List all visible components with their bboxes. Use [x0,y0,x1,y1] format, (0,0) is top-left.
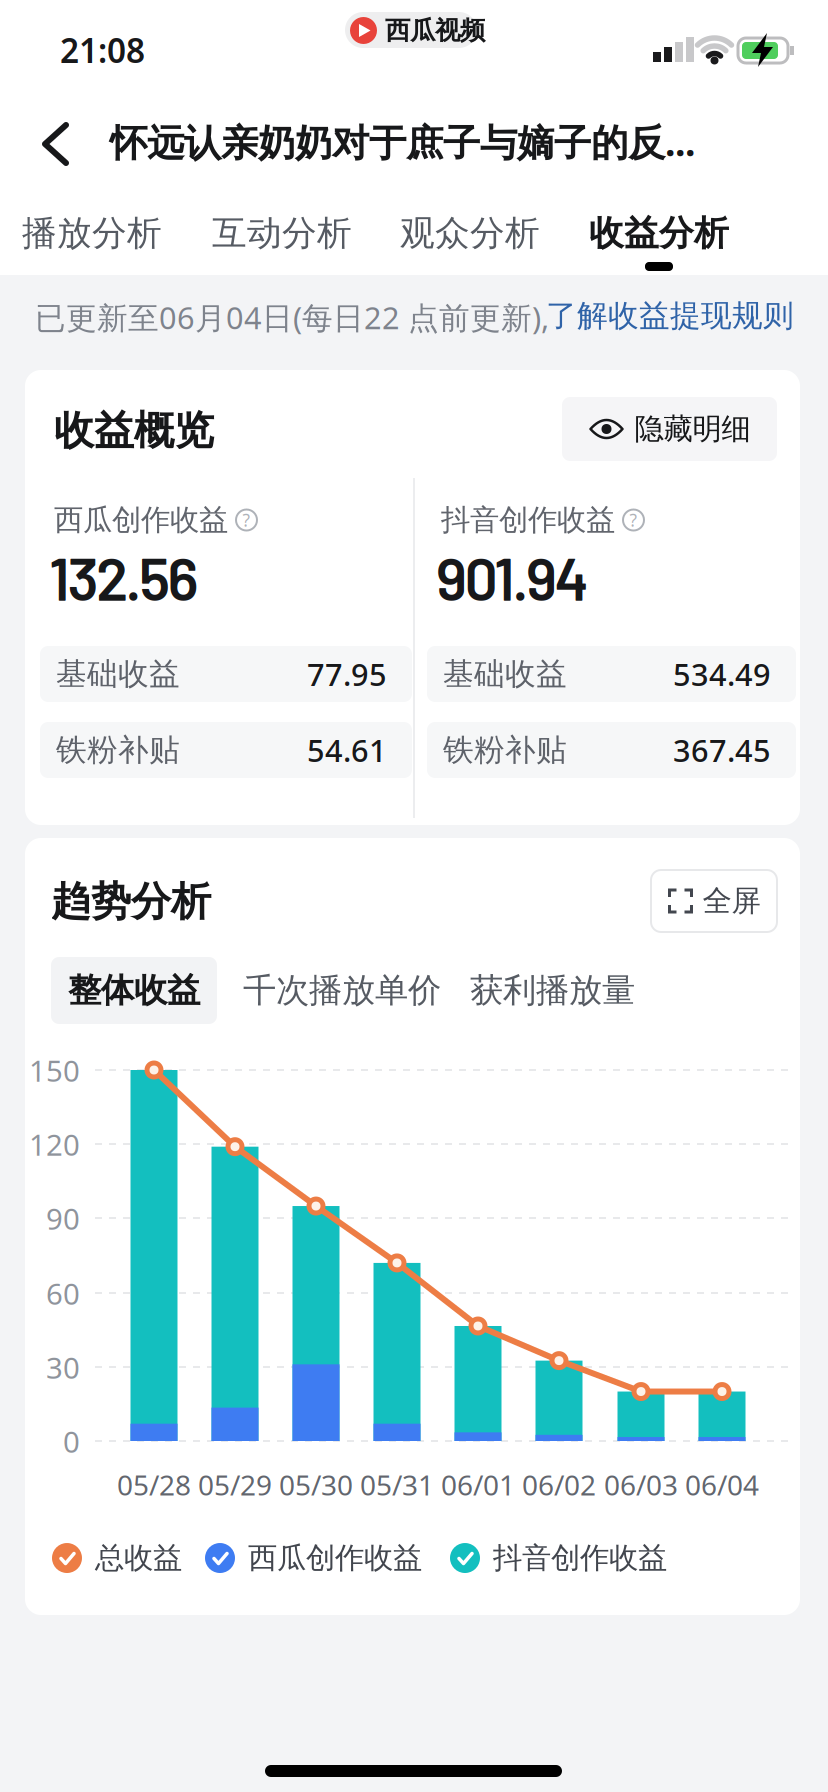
staticText: 了解收益提现规则 [546,297,794,335]
staticText: ? [242,508,250,531]
staticText: 抖音创作收益 [493,1540,667,1576]
staticText: 铁粉补贴 [56,731,180,769]
staticText: ? [629,508,637,531]
staticText: 播放分析 [22,212,162,255]
staticText: 收益概览 [54,406,214,455]
staticText: 901.94 [436,542,588,612]
staticText: 收益分析 [589,212,729,255]
staticText: 120 [29,1125,80,1164]
button[interactable]: 隐藏明细 [562,397,777,461]
staticText: 534.49 [673,654,771,694]
staticText: 90 [46,1199,80,1238]
staticText: 全屏 [702,883,760,919]
staticText: 05/30 [279,1466,353,1503]
staticText: 05/29 [198,1466,272,1503]
button[interactable]: 千次播放单价 [243,970,441,1011]
staticText: 54.61 [307,730,387,770]
staticText: 367.45 [673,730,771,770]
staticText: 千次播放单价 [243,970,441,1011]
staticText: 21:08 [60,28,145,72]
staticText: 已更新至06月04日(每日22 点前更新), [35,297,549,338]
staticText: 150 [29,1051,80,1090]
staticText: 60 [46,1274,80,1313]
staticText: 05/28 [117,1466,191,1503]
staticText: 132.56 [49,542,198,612]
staticText: 基础收益 [56,655,180,693]
button[interactable] [28,116,84,172]
button[interactable]: 观众分析 [400,212,540,255]
staticText: 西瓜视频 [385,15,485,46]
staticText: 06/04 [685,1466,759,1503]
staticText: 西瓜创作收益 [248,1540,422,1576]
staticText: 30 [46,1348,80,1387]
staticText: 怀远认亲奶奶对于庶子与嫡子的反... [110,117,695,167]
staticText: 0 [63,1422,80,1461]
staticText: 获利播放量 [470,970,635,1011]
staticText: 基础收益 [443,655,567,693]
staticText: 06/03 [604,1466,678,1503]
button[interactable]: 全屏 [651,870,777,932]
staticText: 趋势分析 [51,877,211,926]
button[interactable]: 获利播放量 [470,970,635,1011]
staticText: 整体收益 [68,970,200,1011]
staticText: 互动分析 [212,212,352,255]
button[interactable]: 播放分析 [22,212,162,255]
staticText: 77.95 [307,654,387,694]
staticText: 05/31 [360,1466,434,1503]
button[interactable]: 整体收益 [51,957,217,1024]
button[interactable]: 收益分析 [589,212,729,255]
staticText: 观众分析 [400,212,540,255]
staticText: 西瓜创作收益 [54,502,228,538]
staticText: 06/02 [522,1466,596,1503]
staticText: 06/01 [441,1466,515,1503]
staticText: 抖音创作收益 [441,502,615,538]
staticText: 总收益 [95,1540,182,1576]
staticText: 隐藏明细 [634,411,750,447]
button[interactable]: 了解收益提现规则 [546,297,794,335]
button[interactable]: 互动分析 [212,212,352,255]
staticText: 铁粉补贴 [443,731,567,769]
